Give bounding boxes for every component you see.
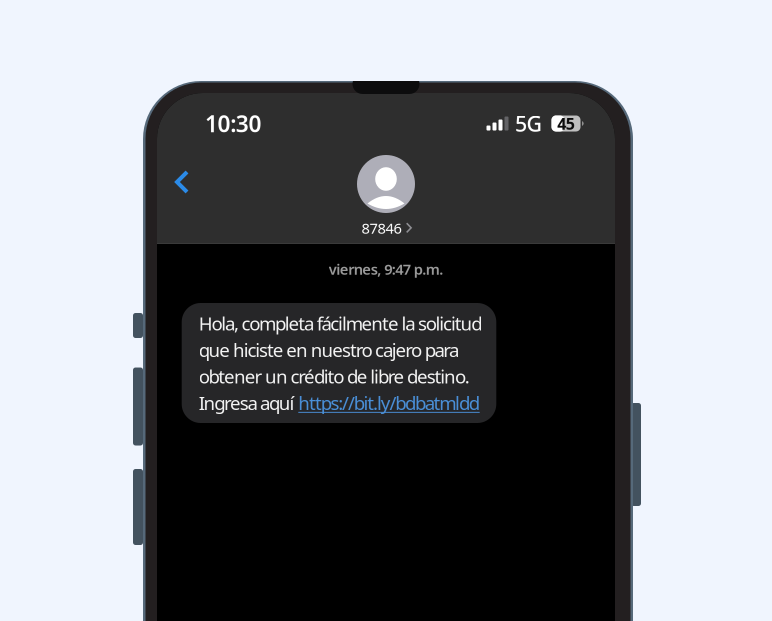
staticText: 45 [557,113,575,134]
staticText: 10:30 [205,108,261,138]
staticText: 87846 [361,218,401,238]
staticText: Ingresa aquí [199,390,298,415]
button[interactable]: Back [160,157,203,206]
staticText: 5G [515,109,542,138]
staticText: que hiciste en nuestro cajero para [199,337,459,362]
staticText: obtener un crédito de libre destino. [199,364,470,389]
staticText: viernes, 9:47 p.m. [329,259,443,279]
staticText: https://bit.ly/bdbatmldd [298,390,480,415]
staticText: Hola, completa fácilmente la solicitud [199,311,482,336]
